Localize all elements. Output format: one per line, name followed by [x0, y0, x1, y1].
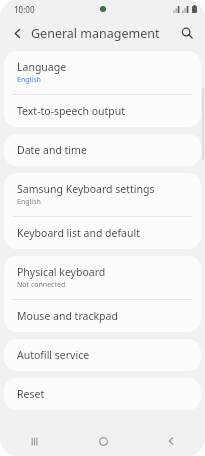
staticText: 10:00	[14, 4, 35, 15]
button[interactable]: Reset	[4, 378, 201, 410]
button[interactable]: Keyboard list and default	[4, 217, 201, 249]
button[interactable]: Search	[175, 21, 199, 45]
staticText: Autofill service	[17, 348, 90, 362]
button[interactable]: Mouse and trackpad	[4, 300, 201, 332]
staticText: English	[17, 197, 41, 207]
staticText: Date and time	[17, 143, 87, 157]
button[interactable]: Date and time	[4, 134, 201, 166]
staticText: Mouse and trackpad	[17, 309, 118, 323]
staticText: Not connected	[17, 280, 66, 290]
button[interactable]: Language	[4, 51, 201, 94]
staticText: Reset	[17, 387, 45, 401]
button[interactable]: Physical keyboard	[4, 256, 201, 299]
button[interactable]: Text-to-speech output	[4, 95, 201, 127]
staticText: Physical keyboard	[17, 265, 106, 279]
button[interactable]: Back	[6, 22, 28, 44]
button[interactable]: Autofill service	[4, 339, 201, 371]
staticText: Samsung Keyboard settings	[17, 182, 155, 196]
button[interactable]: Home	[69, 426, 137, 456]
staticText: Keyboard list and default	[17, 226, 140, 240]
staticText: General management	[31, 25, 160, 42]
button[interactable]: Back	[137, 426, 205, 456]
staticText: Language	[17, 60, 67, 74]
button[interactable]: Samsung Keyboard settings	[4, 173, 201, 216]
staticText: Text-to-speech output	[17, 104, 126, 118]
staticText: English	[17, 75, 41, 85]
button[interactable]: Recent apps	[0, 426, 69, 456]
